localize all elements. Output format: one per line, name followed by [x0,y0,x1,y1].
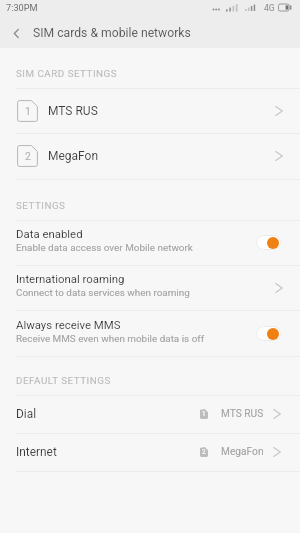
staticText: 1 [202,410,206,418]
staticText: SIM CARD SETTINGS [16,68,118,79]
staticText: 4G [264,3,275,13]
staticText: Always receive MMS [16,318,121,331]
button[interactable]: Internet [0,433,300,471]
staticText: Dial [16,407,37,421]
staticText: Data enabled [16,227,83,240]
staticText: Receive MMS even when mobile data is off [16,333,205,345]
staticText: MegaFon [48,149,99,163]
staticText: 2 [202,448,206,456]
button[interactable]: 1 [0,88,300,133]
staticText: 2 [25,150,31,162]
button[interactable]: Data enabled [0,220,300,265]
staticText: MegaFon [221,446,264,458]
button[interactable]: International roaming [0,265,300,310]
staticText: Connect to data services when roaming [16,287,190,299]
button[interactable]: Toggle [256,326,281,341]
staticText: MTS RUS [48,104,98,118]
button[interactable]: 2 [0,133,300,179]
button[interactable]: Dial [0,395,300,433]
staticText: DEFAULT SETTINGS [16,375,111,386]
button[interactable]: Always receive MMS [0,310,300,356]
staticText: SETTINGS [16,200,66,211]
staticText: 1 [25,105,31,117]
staticText: International roaming [16,272,125,285]
button[interactable]: Back [0,18,33,48]
staticText: SIM cards & mobile networks [33,26,191,40]
staticText: 7:30PM [6,2,38,13]
staticText: Enable data access over Mobile network [16,242,193,254]
staticText: MTS RUS [221,408,264,420]
staticText: Internet [16,445,57,459]
button[interactable]: Toggle [256,235,281,250]
